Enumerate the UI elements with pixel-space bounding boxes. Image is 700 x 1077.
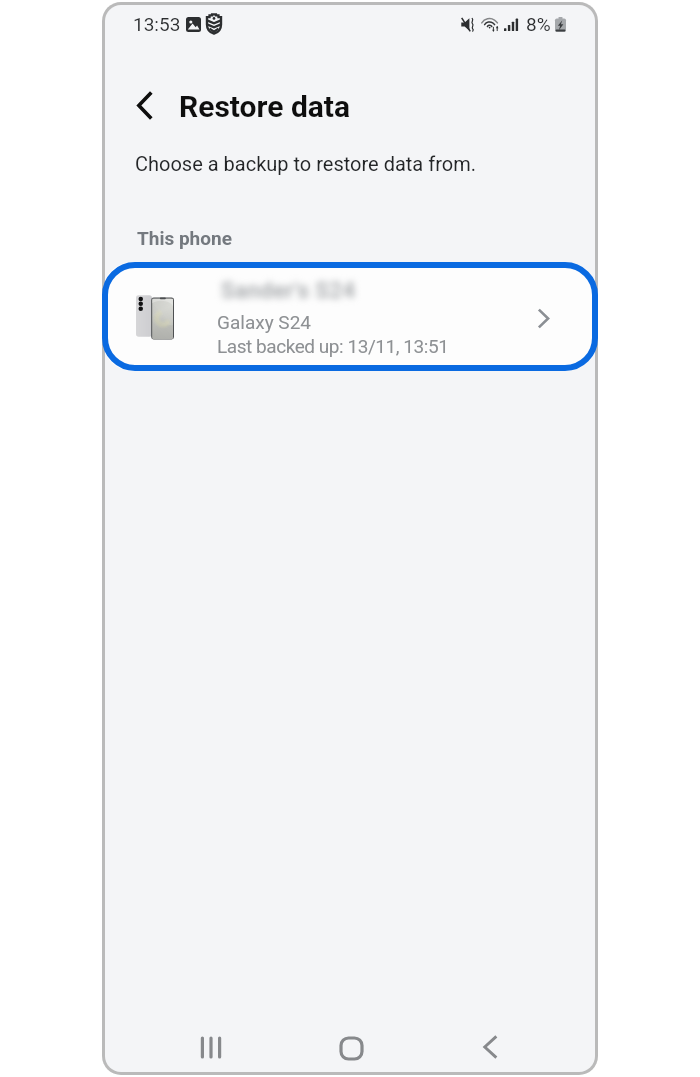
staticText: Sander's S24 xyxy=(221,278,356,304)
button[interactable]: Home xyxy=(317,1014,385,1072)
staticText: Last backed up: 13/11, 13:51 xyxy=(217,335,449,357)
staticText: 8% xyxy=(526,13,551,35)
staticText: Choose a backup to restore data from. xyxy=(135,152,476,175)
button[interactable]: Selected backup xyxy=(102,262,598,371)
staticText: Restore data xyxy=(179,89,351,124)
button[interactable]: Sander's S24 xyxy=(105,262,592,371)
button[interactable]: Navigate up xyxy=(119,79,171,131)
button[interactable]: Recent apps xyxy=(177,1013,245,1072)
staticText: This phone xyxy=(137,227,232,249)
button[interactable]: Back xyxy=(456,1013,524,1072)
staticText: 13:53 xyxy=(133,13,181,35)
staticText: Galaxy S24 xyxy=(217,311,311,333)
